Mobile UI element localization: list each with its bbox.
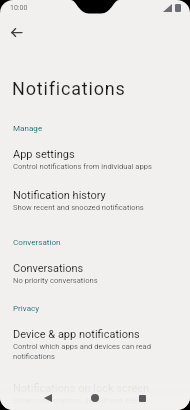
staticText: Manage: [13, 123, 43, 132]
button[interactable]: App settings: [0, 141, 190, 177]
staticText: No priority conversations: [13, 276, 98, 285]
staticText: Conversation: [13, 237, 61, 246]
button[interactable]: Back: [36, 386, 60, 410]
staticText: Show recent and snoozed notifications: [13, 203, 144, 212]
button[interactable]: Recent apps: [130, 386, 154, 410]
staticText: Privacy: [13, 303, 40, 312]
button[interactable]: Device & app notifications: [0, 321, 190, 357]
staticText: 10:00: [10, 4, 28, 12]
staticText: Conversations: [13, 262, 84, 275]
staticText: App settings: [13, 148, 75, 161]
staticText: Device & app notifications: [13, 328, 140, 341]
button[interactable]: Notification history: [0, 182, 190, 218]
staticText: Control notifications from individual ap…: [13, 162, 152, 171]
staticText: Show conversations, default and silent: [13, 396, 143, 405]
staticText: Notification history: [13, 189, 106, 202]
button[interactable]: Conversations: [0, 255, 190, 291]
button[interactable]: Home: [83, 386, 107, 410]
staticText: Notifications: [12, 78, 126, 99]
staticText: Notifications on lock screen: [13, 382, 150, 395]
staticText: Control which apps and devices can read …: [13, 342, 151, 360]
button[interactable]: Notifications on lock screen: [0, 375, 190, 410]
button[interactable]: Navigate up: [4, 20, 28, 44]
